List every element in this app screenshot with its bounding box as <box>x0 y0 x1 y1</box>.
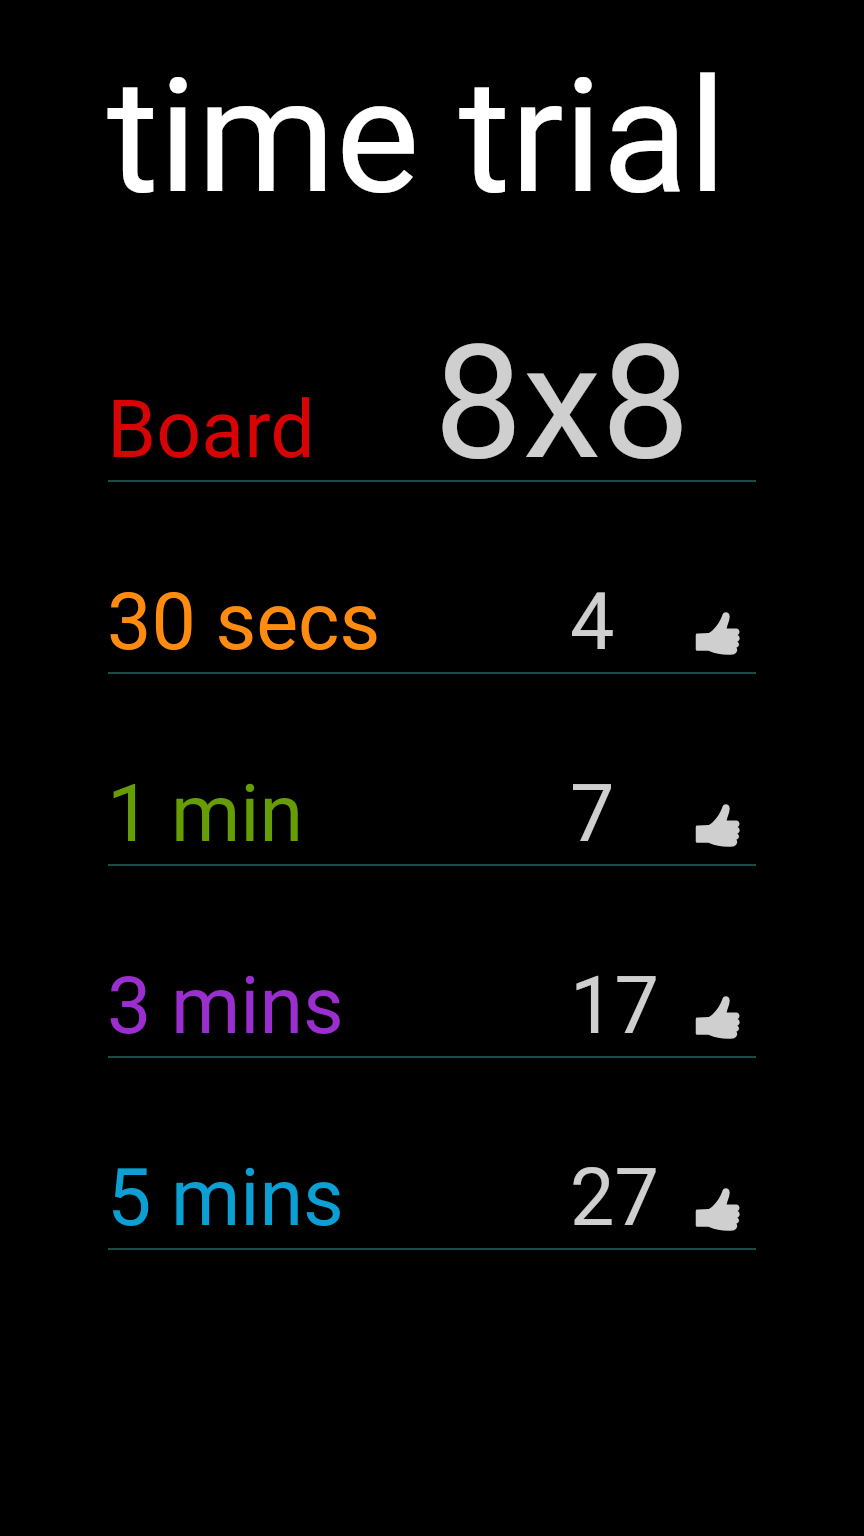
button[interactable]: 5 mins <box>0 1058 864 1250</box>
button[interactable]: 30 secs <box>0 482 864 674</box>
button[interactable]: Mark as liked <box>695 611 741 657</box>
staticText: 1 min <box>107 768 304 861</box>
staticText: 4 <box>570 576 615 669</box>
staticText: 8x8 <box>434 310 690 495</box>
staticText: 17 <box>570 960 659 1053</box>
button[interactable]: 3 mins <box>0 866 864 1058</box>
staticText: Board <box>107 384 315 477</box>
button[interactable]: Mark as liked <box>695 1187 741 1233</box>
button[interactable]: Board <box>0 290 864 482</box>
button[interactable]: Mark as liked <box>695 995 741 1041</box>
button[interactable]: 1 min <box>0 674 864 866</box>
staticText: 27 <box>570 1152 659 1245</box>
staticText: time trial <box>107 44 727 229</box>
button[interactable]: Mark as liked <box>695 803 741 849</box>
staticText: 3 mins <box>107 960 344 1053</box>
staticText: 30 secs <box>107 576 381 669</box>
staticText: 5 mins <box>107 1152 344 1245</box>
staticText: 7 <box>570 768 615 861</box>
